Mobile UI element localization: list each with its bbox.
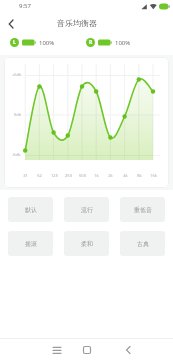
staticText: 16k [150,173,157,178]
button[interactable]: 摇滚 [8,231,53,256]
staticText: 8k [137,173,142,178]
staticText: 流行 [81,206,93,214]
staticText: 重低音 [134,206,152,214]
button[interactable]: 重低音 [120,197,165,222]
staticText: 4k [123,173,128,178]
staticText: +6db [12,72,22,77]
staticText: 古典 [137,240,149,248]
button[interactable] [115,339,141,360]
button[interactable]: 古典 [120,231,165,256]
staticText: 250 [65,173,72,178]
staticText: 默认 [25,206,37,214]
staticText: 500 [79,173,86,178]
button[interactable] [44,339,70,360]
staticText: 摇滚 [25,240,37,248]
button[interactable]: 柔和 [64,231,109,256]
staticText: -6db [12,152,21,157]
staticText: 125 [51,173,58,178]
staticText: 100% [115,39,131,47]
staticText: R [89,39,93,46]
staticText: 音乐均衡器 [57,18,97,28]
staticText: 0db [14,112,22,117]
staticText: 2k [108,173,113,178]
button[interactable]: 流行 [64,197,109,222]
staticText: 100% [39,39,55,47]
button[interactable] [0,14,22,34]
staticText: 62 [37,173,42,178]
staticText: 31 [23,173,28,178]
staticText: L [13,39,16,46]
button[interactable]: 默认 [8,197,53,222]
staticText: 1k [94,173,99,178]
button[interactable] [74,339,100,360]
staticText: 9:57 [19,2,31,10]
staticText: 柔和 [81,240,93,248]
